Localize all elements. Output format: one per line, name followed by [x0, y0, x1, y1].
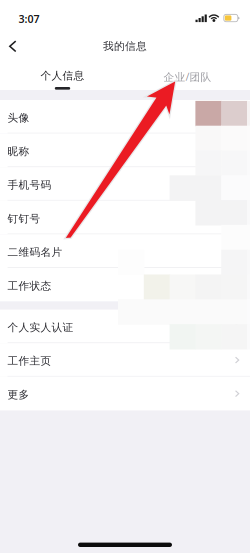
staticText: 企业/团队: [163, 70, 211, 84]
button[interactable]: 钉钉号: [0, 201, 250, 234]
button[interactable]: 头像: [0, 100, 250, 134]
staticText: 更多: [8, 388, 30, 401]
button[interactable]: 昵称: [0, 134, 250, 167]
button[interactable]: Back: [0, 28, 30, 61]
staticText: 手机号码: [8, 178, 52, 192]
button[interactable]: 更多: [0, 377, 250, 410]
staticText: 头像: [8, 111, 30, 124]
button[interactable]: 手机号码: [0, 167, 250, 201]
staticText: 个人信息: [40, 69, 84, 82]
button[interactable]: 二维码名片: [0, 234, 250, 268]
button[interactable]: 个人信息: [0, 61, 125, 90]
staticText: 个人实人认证: [8, 321, 74, 334]
staticText: 二维码名片: [8, 246, 63, 259]
staticText: 我的信息: [103, 40, 147, 53]
button[interactable]: 工作主页: [0, 343, 250, 377]
button[interactable]: 企业/团队: [125, 61, 250, 90]
button[interactable]: 工作状态: [0, 268, 250, 302]
staticText: 3:07: [18, 12, 39, 26]
staticText: 工作主页: [8, 354, 52, 368]
button[interactable]: 个人实人认证: [0, 310, 250, 343]
staticText: 钉钉号: [8, 212, 41, 225]
staticText: 工作状态: [8, 279, 52, 292]
staticText: 昵称: [8, 145, 30, 158]
